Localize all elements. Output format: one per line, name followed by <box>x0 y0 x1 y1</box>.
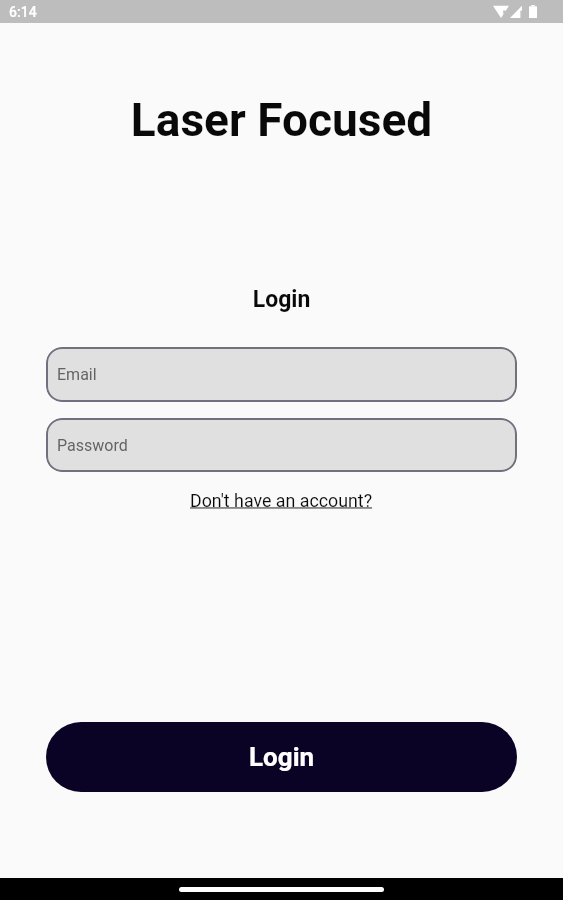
staticText: 6:14 <box>9 4 37 20</box>
staticText: Email <box>57 365 97 384</box>
staticText: Laser Focused <box>0 93 563 147</box>
other: Battery <box>529 5 537 18</box>
staticText: Don't have an account? <box>190 490 373 511</box>
other: Home <box>179 887 384 892</box>
staticText: Login <box>249 742 315 772</box>
staticText: Password <box>57 436 128 455</box>
button[interactable]: Login <box>46 722 517 792</box>
button[interactable]: Password <box>46 418 517 472</box>
other: Mobile signal <box>510 5 523 18</box>
staticText: Login <box>0 286 563 313</box>
button[interactable]: Email <box>46 347 517 402</box>
button[interactable]: Don't have an account? <box>190 490 373 511</box>
other: Wi-Fi signal <box>493 5 509 18</box>
